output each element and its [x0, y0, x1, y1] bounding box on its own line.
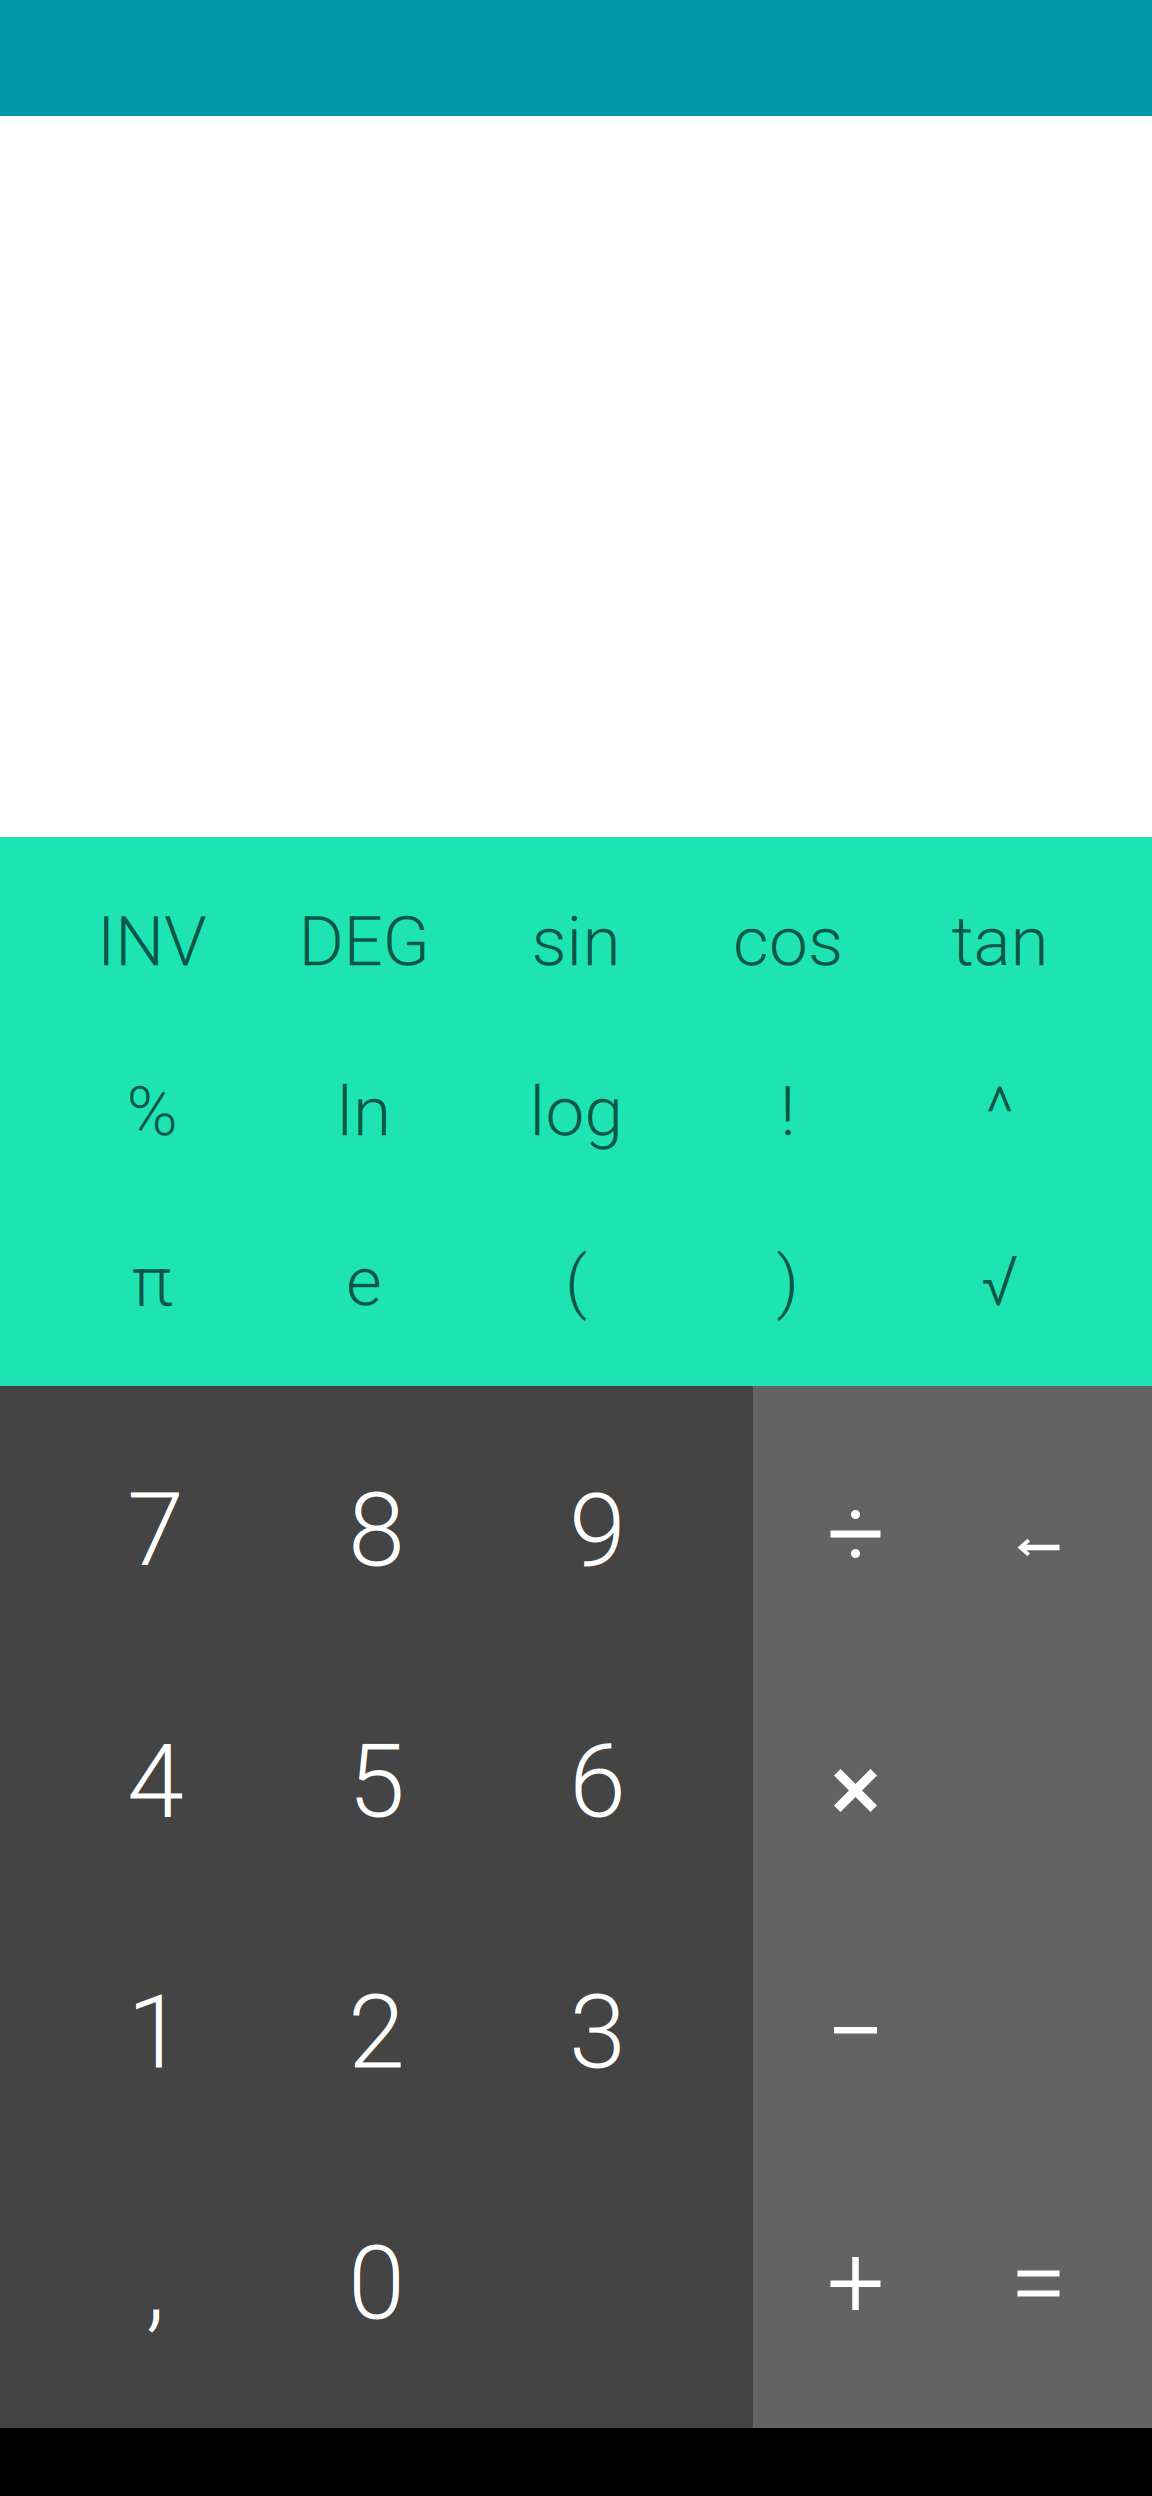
button[interactable]: 5: [266, 1656, 487, 1907]
staticText: 9: [569, 1470, 626, 1591]
staticText: log: [529, 1071, 622, 1152]
button[interactable]: ,: [45, 2158, 266, 2409]
button[interactable]: (: [470, 1196, 682, 1366]
staticText: 1: [127, 1972, 184, 2093]
staticText: 3: [569, 1972, 626, 2093]
button[interactable]: ln: [258, 1026, 470, 1196]
staticText: ): [776, 1241, 799, 1322]
staticText: !: [780, 1071, 796, 1152]
button[interactable]: log: [470, 1026, 682, 1196]
button[interactable]: INV: [46, 856, 258, 1026]
button[interactable]: e: [258, 1196, 470, 1366]
button[interactable]: Subtract: [764, 1907, 947, 2158]
button[interactable]: Add: [764, 2158, 947, 2409]
button[interactable]: 2: [266, 1907, 487, 2158]
button[interactable]: 1: [45, 1907, 266, 2158]
button[interactable]: 3: [487, 1907, 708, 2158]
staticText: 0: [348, 2223, 405, 2344]
staticText: DEG: [298, 901, 429, 982]
button[interactable]: tan: [894, 856, 1106, 1026]
staticText: (: [565, 1241, 587, 1322]
button[interactable]: ^: [894, 1026, 1106, 1196]
button[interactable]: %: [46, 1026, 258, 1196]
button[interactable]: DEG: [258, 856, 470, 1026]
staticText: 7: [127, 1470, 184, 1591]
staticText: ,: [145, 2223, 165, 2344]
button[interactable]: !: [682, 1026, 894, 1196]
staticText: INV: [97, 901, 207, 982]
staticText: ln: [337, 1071, 391, 1152]
button[interactable]: sin: [470, 856, 682, 1026]
staticText: cos: [733, 901, 843, 982]
button[interactable]: 6: [487, 1656, 708, 1907]
button[interactable]: cos: [682, 856, 894, 1026]
staticText: 4: [127, 1721, 184, 1842]
button[interactable]: ): [682, 1196, 894, 1366]
button[interactable]: 7: [45, 1405, 266, 1656]
staticText: 6: [569, 1721, 626, 1842]
staticText: π: [131, 1241, 172, 1322]
staticText: 5: [348, 1721, 405, 1842]
button[interactable]: Multiply: [764, 1656, 947, 1907]
button[interactable]: 4: [45, 1656, 266, 1907]
staticText: ^: [985, 1071, 1014, 1152]
button[interactable]: Equals: [947, 2158, 1130, 2409]
staticText: 2: [348, 1972, 405, 2093]
button[interactable]: 0: [266, 2158, 487, 2409]
button[interactable]: √: [894, 1196, 1106, 1366]
button[interactable]: 9: [487, 1405, 708, 1656]
staticText: tan: [951, 901, 1048, 982]
staticText: √: [981, 1241, 1019, 1322]
staticText: %: [126, 1071, 177, 1152]
staticText: 8: [348, 1470, 405, 1591]
staticText: sin: [531, 901, 620, 982]
button[interactable]: π: [46, 1196, 258, 1366]
button[interactable]: Divide: [764, 1405, 947, 1656]
button[interactable]: Delete: [947, 1405, 1130, 1656]
staticText: e: [346, 1241, 382, 1322]
button[interactable]: 8: [266, 1405, 487, 1656]
